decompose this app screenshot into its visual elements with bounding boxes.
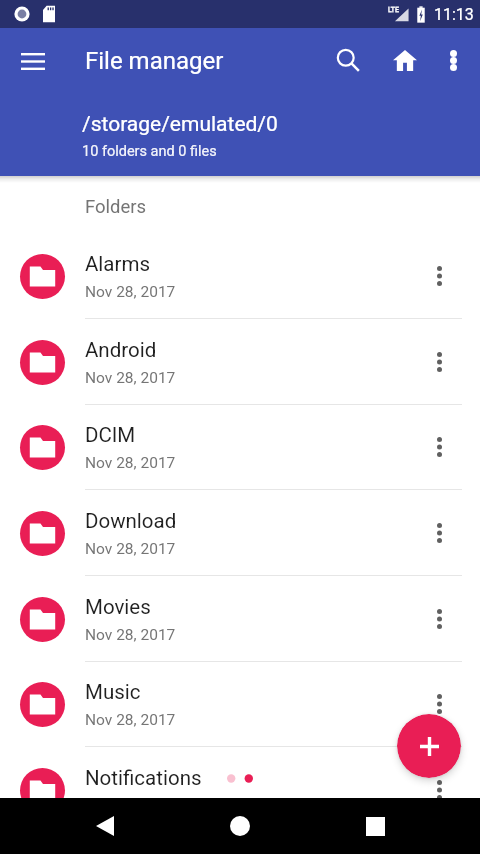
staticText: 10 folders and 0 files xyxy=(82,143,217,160)
staticText: Movies xyxy=(85,595,151,619)
staticText: Nov 28, 2017 xyxy=(85,711,176,729)
button[interactable]: Add xyxy=(397,714,461,778)
staticText: Nov 28, 2017 xyxy=(85,454,176,472)
button[interactable]: Notifications xyxy=(0,747,480,798)
staticText: Folders xyxy=(85,196,147,218)
staticText: Notifications xyxy=(85,766,202,790)
button[interactable]: Music xyxy=(0,661,480,747)
staticText: Nov 28, 2017 xyxy=(85,283,176,301)
button[interactable]: More options xyxy=(429,36,477,84)
button[interactable]: More options for Music xyxy=(415,680,463,728)
staticText: DCIM xyxy=(85,423,136,447)
button[interactable]: More options for DCIM xyxy=(415,423,463,471)
button[interactable]: Back xyxy=(81,802,129,850)
button[interactable]: Recents xyxy=(351,802,399,850)
staticText: 11:13 xyxy=(434,5,474,24)
staticText: Nov 28, 2017 xyxy=(85,626,176,644)
button[interactable]: More options for Notifications xyxy=(415,766,463,798)
button[interactable]: More options for Alarms xyxy=(415,252,463,300)
button[interactable]: Download xyxy=(0,490,480,576)
button[interactable]: More options for Android xyxy=(415,338,463,386)
staticText: Android xyxy=(85,338,157,362)
staticText: Nov 28, 2017 xyxy=(85,369,176,387)
staticText: File manager xyxy=(85,47,224,75)
staticText: /storage/emulated/0 xyxy=(82,112,278,137)
button[interactable]: Home xyxy=(216,802,264,850)
button[interactable]: DCIM xyxy=(0,404,480,490)
button[interactable]: Android xyxy=(0,319,480,405)
staticText: Music xyxy=(85,680,141,704)
staticText: Alarms xyxy=(85,252,151,276)
button[interactable]: More options for Movies xyxy=(415,595,463,643)
button[interactable]: Menu xyxy=(9,37,57,85)
staticText: Download xyxy=(85,509,177,533)
staticText: Nov 28, 2017 xyxy=(85,540,176,558)
staticText: LTE xyxy=(388,6,399,14)
button[interactable]: More options for Download xyxy=(415,509,463,557)
button[interactable]: Movies xyxy=(0,576,480,662)
button[interactable]: Alarms xyxy=(0,233,480,319)
button[interactable]: Search xyxy=(324,36,372,84)
button[interactable]: Home xyxy=(381,36,429,84)
